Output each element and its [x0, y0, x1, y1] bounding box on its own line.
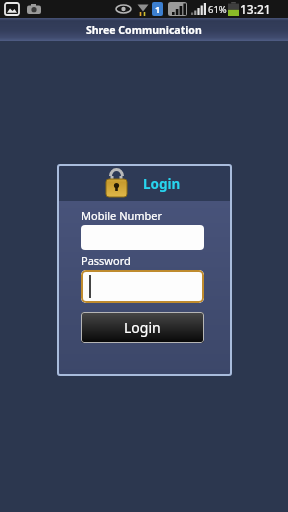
staticText: Password [81, 253, 131, 268]
button[interactable]: Login [81, 312, 204, 343]
staticText: 61% [208, 3, 227, 16]
staticText: Shree Communication [86, 23, 202, 37]
staticText: 1 [155, 3, 161, 15]
staticText: Login [124, 318, 161, 337]
staticText: Login [143, 175, 181, 193]
staticText: Mobile Number [81, 208, 163, 223]
button[interactable] [81, 270, 204, 303]
button[interactable] [81, 225, 204, 250]
staticText: 13:21 [240, 1, 271, 17]
